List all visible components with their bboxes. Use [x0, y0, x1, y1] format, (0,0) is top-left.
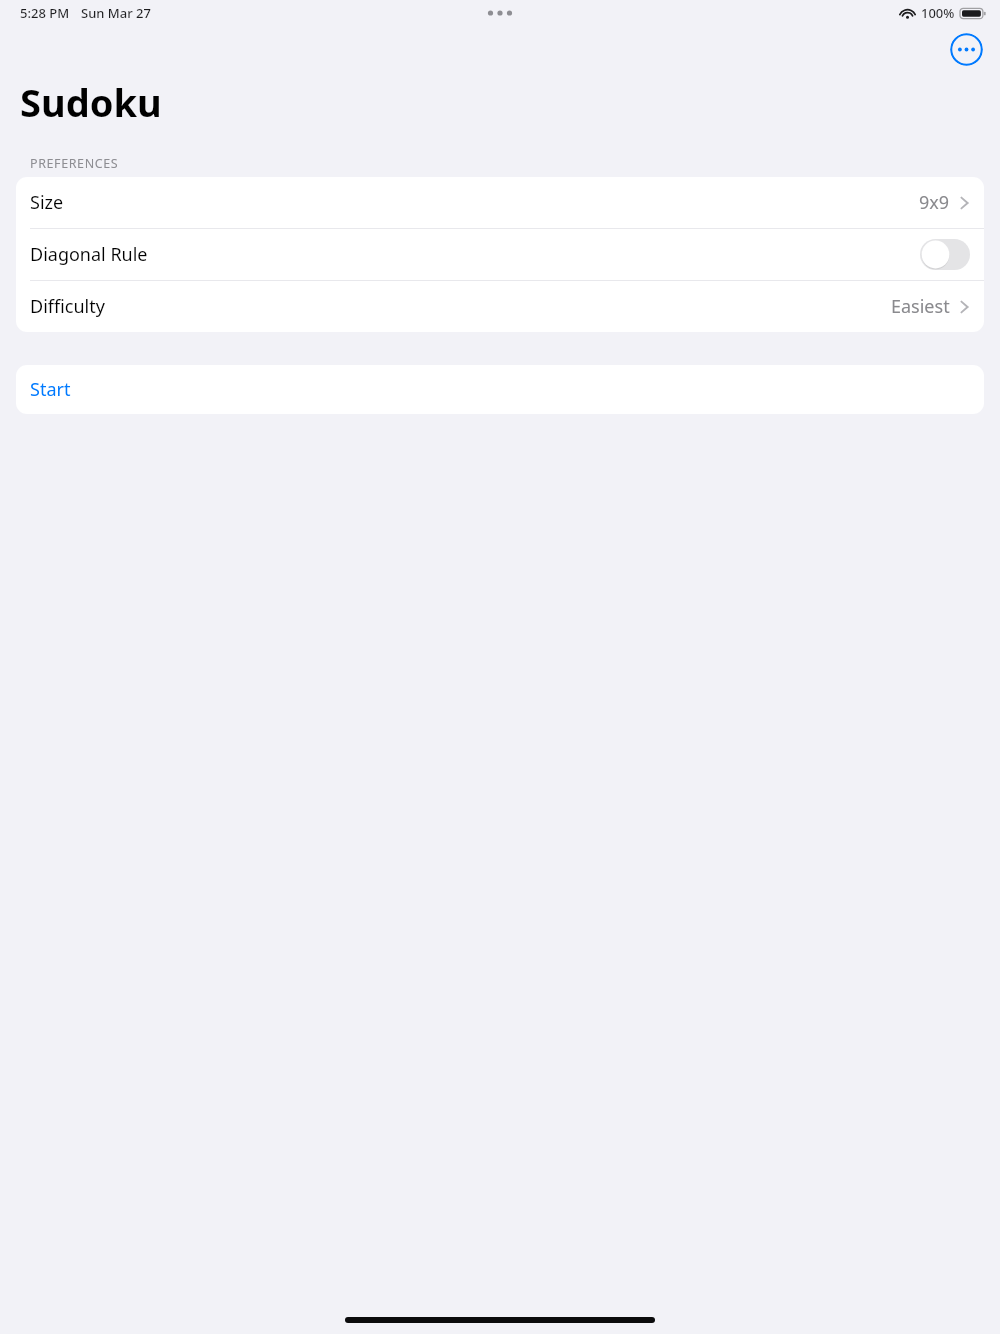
staticText: Easiest — [891, 294, 950, 319]
staticText: Diagonal Rule — [30, 242, 148, 267]
button[interactable]: Diagonal Rule — [16, 229, 984, 280]
button[interactable]: More options — [950, 33, 983, 66]
staticText: Sudoku — [20, 76, 162, 128]
button[interactable]: Start — [16, 365, 984, 414]
staticText: Difficulty — [30, 294, 105, 319]
staticText: Size — [30, 190, 64, 215]
button[interactable]: Difficulty — [16, 281, 984, 332]
staticText: 5:28 PM — [20, 4, 70, 22]
staticText: 100% — [921, 4, 955, 22]
staticText: 9x9 — [919, 190, 950, 215]
staticText: PREFERENCES — [30, 155, 119, 172]
staticText: Sun Mar 27 — [81, 4, 151, 22]
staticText: Start — [30, 377, 71, 402]
button[interactable]: Size — [16, 177, 984, 228]
button[interactable]: Diagonal Rule toggle — [920, 239, 970, 270]
